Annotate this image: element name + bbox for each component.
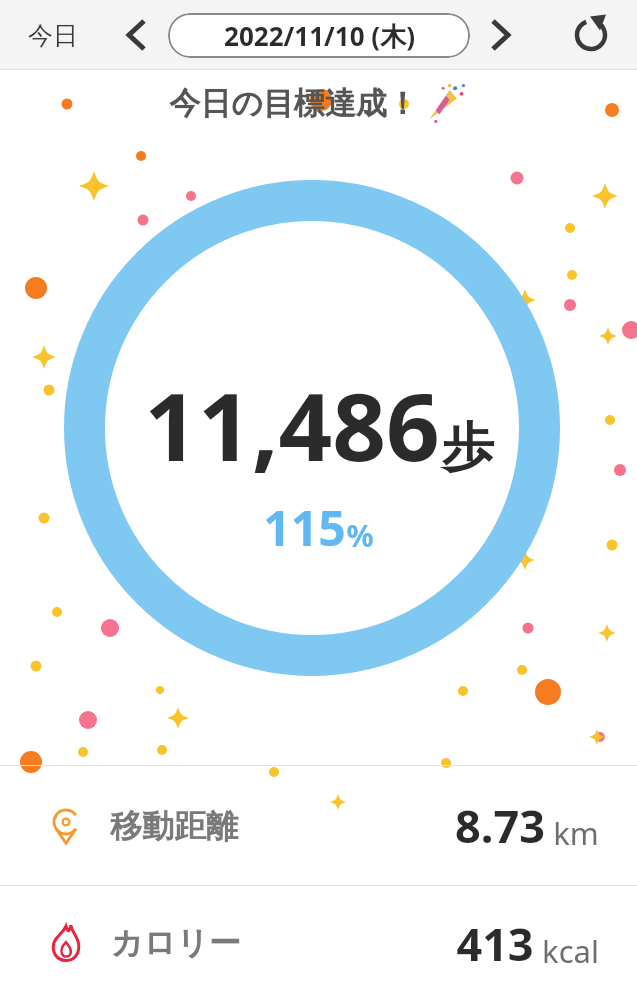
button[interactable]: Previous day [112,11,160,59]
staticText: 413 [456,913,534,974]
button[interactable]: カロリー [0,886,637,1000]
staticText: 歩 [442,415,494,481]
staticText: カロリー [110,923,241,963]
button[interactable]: Refresh [565,9,617,61]
staticText: km [553,812,599,854]
staticText: 115 [263,495,346,560]
button[interactable]: 2022/11/10 (木) [168,13,470,58]
staticText: 2022/11/10 (木) [224,18,415,54]
staticText: 今日 [28,20,78,51]
staticText: 8.73 [455,795,545,856]
staticText: kcal [542,930,599,972]
button[interactable]: 今日 [18,14,88,57]
staticText: 11,486 [144,361,440,489]
button[interactable]: 移動距離 [0,766,637,885]
button[interactable]: Next day [476,11,524,59]
staticText: % [346,515,374,556]
staticText: 今日の目標達成！ [169,84,418,123]
staticText: 移動距離 [110,806,238,846]
